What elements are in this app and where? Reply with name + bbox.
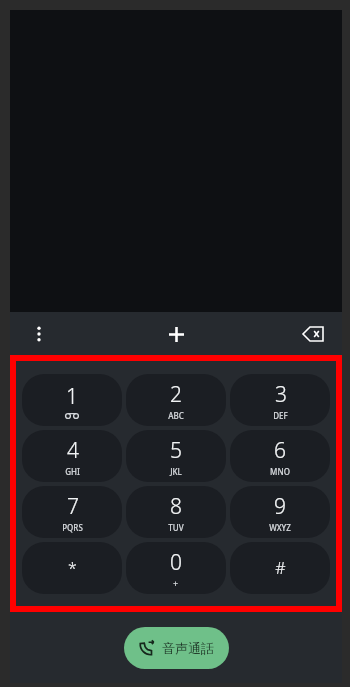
staticText: 6 <box>274 436 286 465</box>
button[interactable]: 5 <box>126 430 226 482</box>
button[interactable]: 9 <box>230 486 330 538</box>
button[interactable]: Add contact <box>156 314 196 354</box>
button[interactable]: 4 <box>22 430 122 482</box>
staticText: 0 <box>170 548 182 577</box>
staticText: 9 <box>274 492 286 521</box>
staticText: + <box>173 577 179 589</box>
staticText: DEF <box>273 410 288 421</box>
staticText: WXYZ <box>269 522 291 533</box>
staticText: PQRS <box>62 522 83 533</box>
button[interactable]: 0 <box>126 542 226 594</box>
button[interactable]: 6 <box>230 430 330 482</box>
staticText: 7 <box>67 492 79 521</box>
staticText: ABC <box>168 410 184 421</box>
button[interactable]: * <box>22 542 122 594</box>
staticText: MNO <box>270 466 290 477</box>
staticText: 8 <box>170 492 182 521</box>
staticText: * <box>68 557 77 579</box>
staticText: 2 <box>170 380 182 409</box>
button[interactable]: 2 <box>126 374 226 426</box>
button[interactable]: Backspace <box>296 317 330 351</box>
button[interactable]: 1 voicemail <box>22 374 122 426</box>
staticText: # <box>275 557 286 579</box>
button[interactable]: 7 <box>22 486 122 538</box>
staticText: JKL <box>170 466 182 477</box>
staticText: 4 <box>67 436 79 465</box>
button[interactable]: 音声通話 <box>124 627 229 669</box>
staticText: 5 <box>170 436 182 465</box>
button[interactable]: # <box>230 542 330 594</box>
staticText: 1 <box>66 382 78 411</box>
staticText: 3 <box>275 380 287 409</box>
button[interactable]: 3 <box>230 374 330 426</box>
button[interactable]: More options <box>24 319 54 349</box>
button[interactable]: 8 <box>126 486 226 538</box>
staticText: GHI <box>65 466 80 477</box>
staticText: 音声通話 <box>162 640 214 656</box>
staticText: TUV <box>168 522 184 533</box>
